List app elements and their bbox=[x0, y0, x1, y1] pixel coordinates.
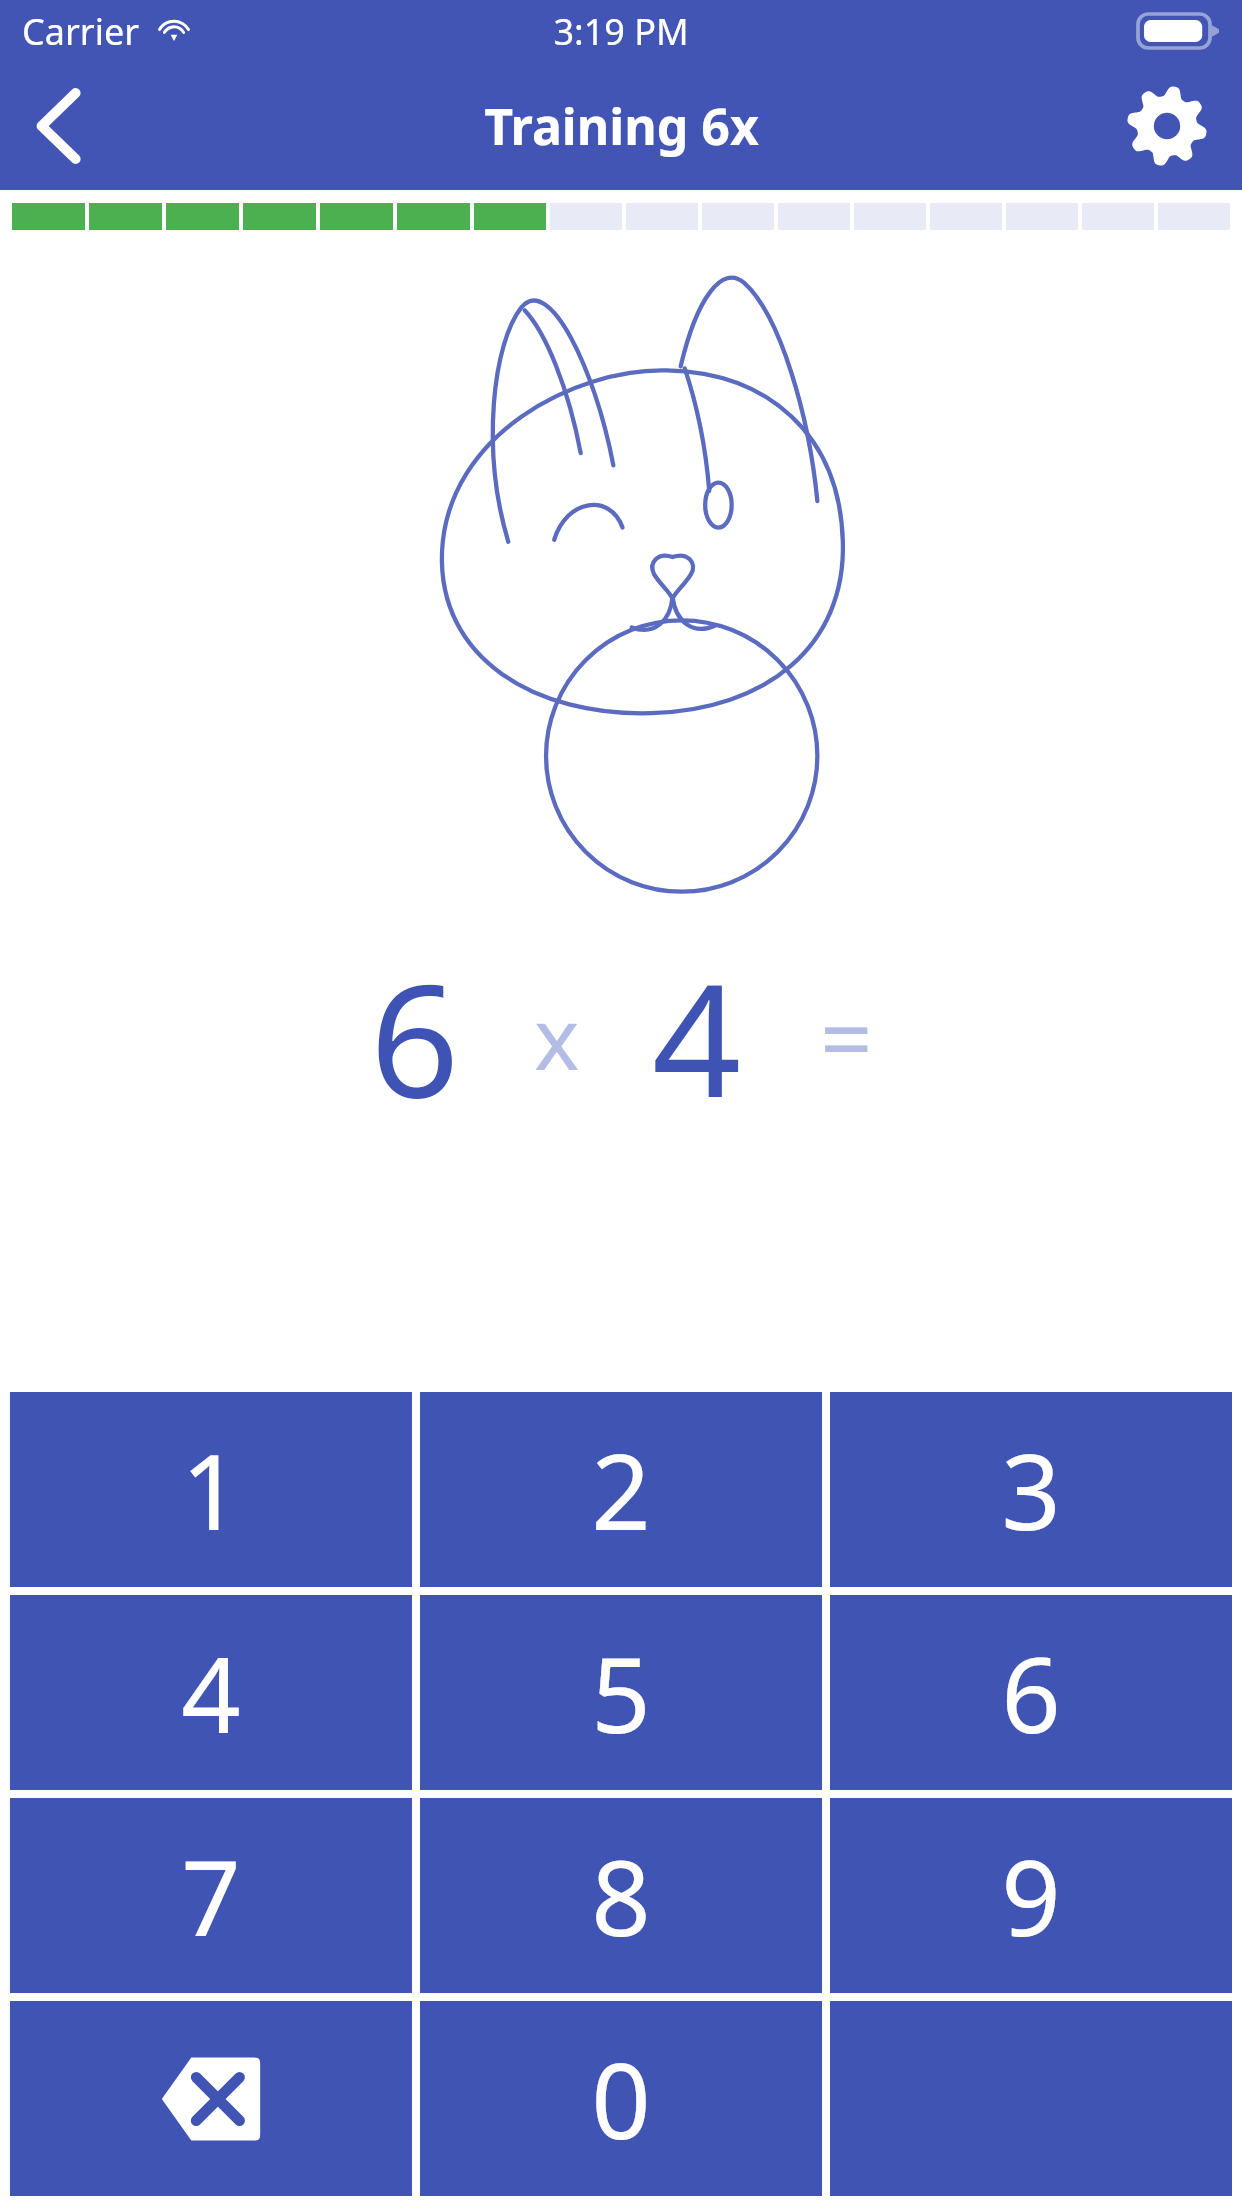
staticText: 3:19 PM bbox=[553, 7, 689, 56]
button[interactable]: Back bbox=[0, 66, 120, 186]
staticText: Training 6x bbox=[484, 92, 759, 160]
button[interactable]: 8 bbox=[420, 1798, 822, 1993]
staticText: 2 bbox=[591, 1419, 651, 1561]
button[interactable]: 5 bbox=[420, 1595, 822, 1790]
button[interactable]: Backspace bbox=[10, 2001, 412, 2196]
staticText: 7 bbox=[181, 1825, 241, 1967]
button[interactable]: 6 bbox=[830, 1595, 1232, 1790]
button[interactable]: 2 bbox=[420, 1392, 822, 1587]
staticText: 4 bbox=[181, 1622, 241, 1764]
staticText: = bbox=[820, 974, 873, 1099]
staticText: 4 bbox=[652, 930, 742, 1142]
button[interactable]: 1 bbox=[10, 1392, 412, 1587]
button[interactable]: 0 bbox=[420, 2001, 822, 2196]
button[interactable]: 4 bbox=[10, 1595, 412, 1790]
staticText: 1 bbox=[181, 1419, 241, 1561]
staticText: 8 bbox=[591, 1825, 651, 1967]
staticText: 0 bbox=[591, 2028, 651, 2170]
button[interactable]: 9 bbox=[830, 1798, 1232, 1993]
button[interactable]: 7 bbox=[10, 1798, 412, 1993]
staticText: 9 bbox=[1001, 1825, 1061, 1967]
staticText: 6 bbox=[370, 930, 460, 1142]
staticText: 6 bbox=[1001, 1622, 1061, 1764]
button[interactable]: Settings bbox=[1112, 71, 1222, 181]
staticText: 3 bbox=[1001, 1419, 1061, 1561]
button[interactable]: 3 bbox=[830, 1392, 1232, 1587]
staticText: Carrier bbox=[22, 7, 140, 56]
staticText: 5 bbox=[591, 1622, 651, 1764]
staticText: x bbox=[534, 978, 580, 1095]
